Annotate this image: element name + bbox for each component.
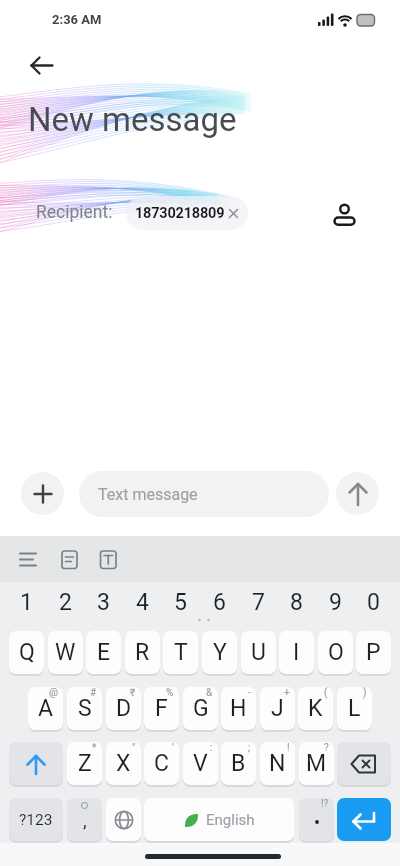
staticText: 2 xyxy=(59,589,72,616)
staticText: Y xyxy=(213,639,227,666)
button[interactable]: H xyxy=(221,687,256,730)
staticText: L xyxy=(348,695,361,722)
button[interactable]: D xyxy=(106,687,141,730)
staticText: English xyxy=(206,811,255,829)
button[interactable]: Z xyxy=(67,742,102,785)
staticText: * xyxy=(92,742,97,754)
staticText: Q xyxy=(19,639,35,666)
button[interactable] xyxy=(106,798,141,841)
button[interactable]: J xyxy=(260,687,295,730)
button[interactable]: 8 xyxy=(279,583,314,621)
button[interactable]: S xyxy=(67,687,102,730)
button[interactable]: T xyxy=(163,631,198,674)
button[interactable]: E xyxy=(86,631,121,674)
button[interactable]: X xyxy=(106,742,141,785)
button[interactable] xyxy=(9,742,63,785)
button[interactable]: Text message xyxy=(79,471,329,517)
button[interactable]: W xyxy=(48,631,83,674)
button[interactable]: L xyxy=(337,687,372,730)
staticText: G xyxy=(193,695,209,722)
button[interactable]: 6 xyxy=(202,583,237,621)
button[interactable]: Y xyxy=(202,631,237,674)
button[interactable]: 9 xyxy=(318,583,353,621)
staticText: !? xyxy=(321,798,329,810)
button[interactable]: G xyxy=(183,687,218,730)
staticText: ! xyxy=(287,742,290,754)
staticText: 3 xyxy=(97,589,110,616)
button[interactable]: R xyxy=(125,631,160,674)
button[interactable]: V xyxy=(183,742,218,785)
staticText: ₹ xyxy=(130,687,136,699)
button[interactable]: ?123 xyxy=(9,798,63,841)
staticText: ( xyxy=(324,687,328,699)
button[interactable]: I xyxy=(279,631,314,674)
button[interactable]: !? xyxy=(299,798,334,841)
button[interactable] xyxy=(327,195,363,231)
staticText: O xyxy=(328,639,344,666)
button[interactable]: P xyxy=(356,631,391,674)
button[interactable]: A xyxy=(28,687,63,730)
staticText: ?123 xyxy=(19,811,53,829)
button[interactable] xyxy=(337,742,391,785)
staticText: - xyxy=(248,687,251,699)
staticText: " xyxy=(132,742,136,754)
staticText: N xyxy=(269,750,286,777)
staticText: V xyxy=(193,750,208,777)
staticText: 0 xyxy=(367,589,380,616)
button[interactable] xyxy=(21,472,64,515)
button[interactable] xyxy=(94,546,122,574)
staticText: T xyxy=(174,639,188,666)
staticText: % xyxy=(166,687,174,699)
button[interactable]: 2 xyxy=(48,583,83,621)
button[interactable]: K xyxy=(298,687,333,730)
staticText: : xyxy=(210,742,213,754)
staticText: H xyxy=(230,695,247,722)
staticText: F xyxy=(155,695,168,722)
staticText: ? xyxy=(324,742,329,754)
button[interactable]: , xyxy=(67,798,102,841)
button[interactable]: Q xyxy=(9,631,44,674)
staticText: B xyxy=(231,750,246,777)
button[interactable]: F xyxy=(144,687,179,730)
button[interactable] xyxy=(336,472,379,515)
staticText: ) xyxy=(363,687,367,699)
staticText: E xyxy=(97,639,111,666)
button[interactable]: 3 xyxy=(86,583,121,621)
staticText: 4 xyxy=(136,589,149,616)
button[interactable]: English xyxy=(144,798,294,841)
button[interactable]: 4 xyxy=(125,583,160,621)
staticText: + xyxy=(284,687,290,699)
staticText: ' xyxy=(172,742,174,754)
button[interactable] xyxy=(20,44,64,88)
button[interactable] xyxy=(14,546,42,574)
button[interactable]: 0 xyxy=(356,583,391,621)
staticText: X xyxy=(116,750,131,777)
staticText: , xyxy=(83,809,87,831)
staticText: Recipient: xyxy=(36,202,113,223)
staticText: 6 xyxy=(213,589,226,616)
staticText: 9 xyxy=(329,589,342,616)
staticText: Text message xyxy=(98,485,198,504)
staticText: 5 xyxy=(174,589,187,616)
button[interactable]: 7 xyxy=(241,583,276,621)
button[interactable]: C xyxy=(144,742,179,785)
staticText: @ xyxy=(49,687,58,699)
button[interactable]: N xyxy=(260,742,295,785)
button[interactable]: 5 xyxy=(163,583,198,621)
button[interactable]: M xyxy=(299,742,334,785)
button[interactable]: 18730218809 xyxy=(126,196,248,230)
staticText: D xyxy=(116,695,132,722)
button[interactable]: O xyxy=(318,631,353,674)
staticText: S xyxy=(78,695,92,722)
button[interactable]: B xyxy=(221,742,256,785)
staticText: M xyxy=(306,750,327,777)
staticText: K xyxy=(308,695,323,722)
button[interactable] xyxy=(337,798,391,841)
staticText: Z xyxy=(78,750,92,777)
button[interactable]: 1 xyxy=(9,583,44,621)
button[interactable] xyxy=(55,546,83,574)
staticText: R xyxy=(135,639,150,666)
staticText: U xyxy=(251,639,266,666)
staticText: & xyxy=(206,687,213,699)
button[interactable]: U xyxy=(241,631,276,674)
